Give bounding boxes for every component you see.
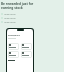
button[interactable] — [21, 43, 32, 50]
staticText: Dashboard — [8, 34, 20, 37]
staticText: Lorem ipsum — [4, 17, 16, 20]
staticText: Lorem ipsum — [4, 21, 16, 24]
button[interactable]: Lorem ipsum — [1, 16, 16, 20]
button[interactable]: Lorem ipsum — [1, 20, 16, 24]
staticText: Lorem ipsum — [4, 13, 16, 16]
button[interactable] — [8, 51, 19, 58]
button[interactable] — [8, 43, 19, 50]
button[interactable]: Lorem ipsum — [1, 12, 16, 16]
button[interactable] — [21, 51, 32, 58]
staticText: Be rewarded just for earning stock — [1, 2, 34, 10]
